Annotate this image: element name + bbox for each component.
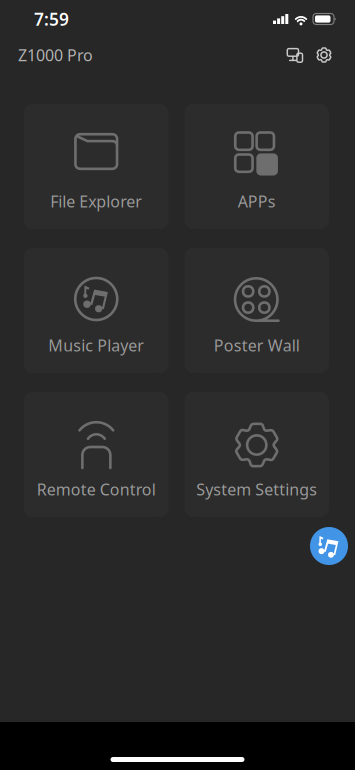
staticText: Poster Wall bbox=[214, 335, 300, 356]
button[interactable]: System Settings bbox=[184, 392, 329, 517]
button[interactable]: Poster Wall bbox=[184, 248, 329, 373]
staticText: Remote Control bbox=[37, 479, 156, 500]
button[interactable]: Now playing bbox=[310, 527, 348, 565]
staticText: Z1000 Pro bbox=[18, 44, 93, 66]
staticText: File Explorer bbox=[50, 191, 142, 212]
staticText: 7:59 bbox=[34, 7, 69, 30]
button[interactable]: File Explorer bbox=[24, 104, 168, 229]
button[interactable]: Settings bbox=[309, 40, 339, 70]
staticText: APPs bbox=[238, 191, 276, 212]
button[interactable]: Screen mirroring bbox=[280, 40, 310, 70]
staticText: System Settings bbox=[196, 479, 317, 500]
button[interactable]: Music Player bbox=[24, 248, 168, 373]
button[interactable]: APPs bbox=[184, 104, 329, 229]
button[interactable]: Remote Control bbox=[24, 392, 168, 517]
staticText: Music Player bbox=[48, 335, 144, 356]
